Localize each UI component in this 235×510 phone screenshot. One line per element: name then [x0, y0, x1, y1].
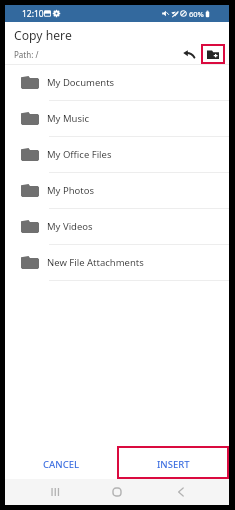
button[interactable]: INSERT [117, 448, 229, 481]
staticText: New File Attachments [47, 256, 144, 269]
button[interactable]: My Documents [5, 65, 229, 100]
button[interactable]: Home [100, 479, 134, 505]
button[interactable]: My Music [5, 101, 229, 136]
button[interactable]: CANCEL [5, 448, 117, 481]
button[interactable]: Create new folder [201, 44, 225, 64]
staticText: INSERT [157, 458, 190, 471]
staticText: 60% [189, 9, 204, 19]
button[interactable]: My Office Files [5, 137, 229, 172]
staticText: Path: / [14, 49, 39, 60]
staticText: My Documents [47, 76, 115, 89]
staticText: 12:10 [22, 8, 44, 20]
staticText: My Videos [47, 220, 93, 233]
staticText: My Office Files [47, 148, 112, 161]
button[interactable]: My Videos [5, 209, 229, 244]
button[interactable]: New File Attachments [5, 245, 229, 280]
button[interactable]: Back [179, 44, 199, 64]
button[interactable]: Back [162, 479, 196, 505]
button[interactable]: Recents [38, 479, 72, 505]
staticText: My Music [47, 112, 89, 125]
staticText: Copy here [14, 27, 72, 44]
button[interactable]: My Photos [5, 173, 229, 208]
staticText: CANCEL [43, 458, 80, 471]
staticText: My Photos [47, 184, 95, 197]
